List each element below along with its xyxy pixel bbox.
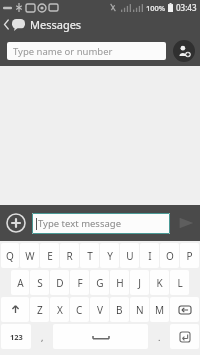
staticText: T xyxy=(87,249,93,263)
staticText: . xyxy=(158,331,161,343)
staticText: X xyxy=(57,303,63,317)
button[interactable]: E xyxy=(40,243,59,268)
button[interactable]: H xyxy=(110,270,129,295)
button[interactable]: B xyxy=(110,297,129,322)
button[interactable]: O xyxy=(160,243,179,268)
staticText: W xyxy=(25,249,35,263)
staticText: K xyxy=(156,276,163,290)
button[interactable]: J xyxy=(130,270,149,295)
button[interactable]: A xyxy=(11,270,29,295)
button[interactable]: Backspace xyxy=(170,297,199,322)
staticText: U xyxy=(126,249,134,263)
button[interactable]: Back xyxy=(0,18,11,31)
staticText: Q xyxy=(6,249,14,263)
button[interactable]: Type text message xyxy=(32,213,170,234)
button[interactable]: Space xyxy=(53,324,148,349)
staticText: V xyxy=(97,303,103,317)
staticText: H xyxy=(116,276,124,290)
staticText: B xyxy=(116,303,123,317)
staticText: 03:43 xyxy=(176,2,197,13)
button[interactable]: U xyxy=(120,243,139,268)
staticText: Y xyxy=(107,249,113,263)
button[interactable]: R xyxy=(60,243,79,268)
button[interactable]: Add attachment xyxy=(5,212,27,234)
button[interactable]: T xyxy=(80,243,99,268)
button[interactable]: Type name or number xyxy=(7,42,166,60)
button[interactable]: 123 xyxy=(1,324,31,349)
staticText: Z xyxy=(37,303,43,317)
staticText: N xyxy=(136,303,144,317)
button[interactable]: V xyxy=(90,297,109,322)
button[interactable]: W xyxy=(20,243,39,268)
button[interactable]: Shift xyxy=(1,297,29,322)
button[interactable]: M xyxy=(150,297,169,322)
staticText: O xyxy=(166,249,174,263)
staticText: L xyxy=(177,276,183,290)
button[interactable]: , xyxy=(32,324,52,349)
staticText: I xyxy=(148,249,152,263)
staticText: M xyxy=(155,303,165,317)
button[interactable]: N xyxy=(130,297,149,322)
staticText: 100% xyxy=(146,3,166,13)
button[interactable]: K xyxy=(150,270,169,295)
staticText: D xyxy=(56,276,64,290)
button[interactable]: Y xyxy=(100,243,119,268)
staticText: Type text message xyxy=(38,217,122,230)
staticText: Messages xyxy=(30,17,82,32)
staticText: E xyxy=(47,249,53,263)
staticText: C xyxy=(76,303,83,317)
button[interactable]: G xyxy=(90,270,109,295)
button[interactable]: Q xyxy=(1,243,19,268)
button[interactable]: Send xyxy=(175,212,197,234)
staticText: J xyxy=(138,276,141,290)
staticText: S xyxy=(37,276,43,290)
staticText: F xyxy=(77,276,83,290)
staticText: Type name or number xyxy=(13,45,113,58)
button[interactable]: . xyxy=(149,324,169,349)
staticText: , xyxy=(41,331,44,343)
staticText: A xyxy=(17,276,24,290)
staticText: R xyxy=(66,249,73,263)
staticText: G xyxy=(96,276,104,290)
button[interactable]: Add recipient xyxy=(173,40,195,62)
button[interactable]: X xyxy=(50,297,69,322)
button[interactable]: Enter xyxy=(170,324,199,349)
button[interactable]: P xyxy=(180,243,199,268)
button[interactable]: C xyxy=(70,297,89,322)
staticText: P xyxy=(186,249,193,263)
button[interactable]: D xyxy=(50,270,69,295)
staticText: 123 xyxy=(10,332,23,342)
button[interactable]: F xyxy=(70,270,89,295)
button[interactable]: L xyxy=(170,270,189,295)
button[interactable]: S xyxy=(30,270,49,295)
button[interactable]: Z xyxy=(30,297,49,322)
button[interactable]: I xyxy=(140,243,159,268)
